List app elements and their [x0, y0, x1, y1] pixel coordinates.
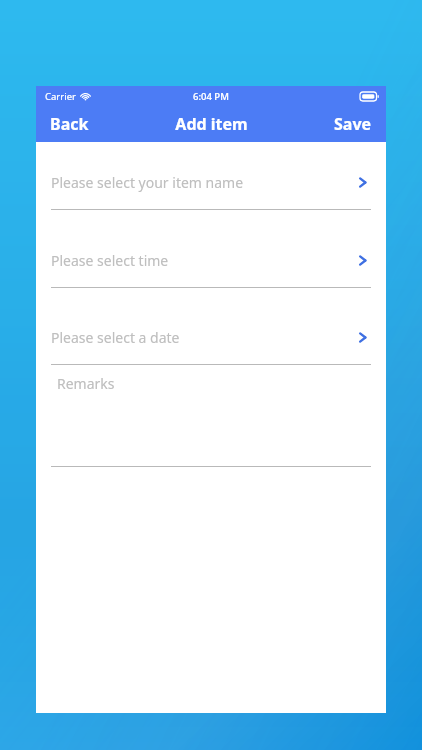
staticText: Please select time — [51, 251, 354, 270]
other: Select date — [354, 329, 371, 346]
staticText: Carrier — [45, 90, 76, 103]
staticText: 6:04 PM — [193, 90, 229, 103]
other: Select item name — [354, 174, 371, 191]
other: Select time — [354, 252, 371, 269]
button[interactable]: Save — [320, 106, 386, 142]
button[interactable]: Please select a date — [36, 326, 386, 348]
staticText: Save — [334, 113, 372, 135]
button[interactable]: Please select your item name — [36, 171, 386, 193]
staticText: Remarks — [57, 374, 115, 393]
button[interactable]: Back — [36, 106, 103, 142]
staticText: Add item — [175, 113, 248, 135]
button[interactable]: Remarks — [36, 365, 386, 466]
staticText: Back — [50, 113, 89, 135]
button[interactable]: Please select time — [36, 249, 386, 271]
staticText: Please select your item name — [51, 173, 354, 192]
staticText: Please select a date — [51, 328, 354, 347]
